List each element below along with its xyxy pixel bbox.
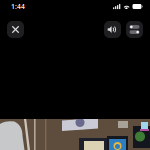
button[interactable]: Effects xyxy=(126,21,143,38)
button[interactable]: Close xyxy=(7,21,24,38)
staticText: 1:44 xyxy=(11,2,25,11)
button[interactable]: Speaker xyxy=(104,21,121,38)
